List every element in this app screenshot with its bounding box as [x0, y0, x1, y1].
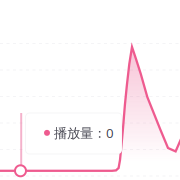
staticText: 播放量：0 [54, 124, 114, 142]
